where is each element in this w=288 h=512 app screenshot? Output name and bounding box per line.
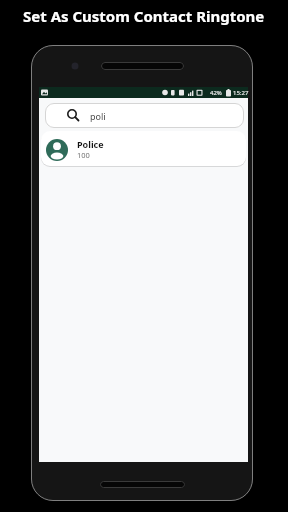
button[interactable]: poli: [45, 103, 244, 128]
staticText: Set As Custom Contact Ringtone: [23, 6, 265, 26]
staticText: 42%: [210, 89, 222, 97]
staticText: poli: [90, 110, 106, 122]
staticText: 100: [77, 150, 90, 160]
staticText: Police: [77, 138, 104, 150]
button[interactable]: Police: [41, 131, 246, 166]
button[interactable]: [100, 481, 185, 488]
staticText: 15:27: [233, 89, 249, 97]
